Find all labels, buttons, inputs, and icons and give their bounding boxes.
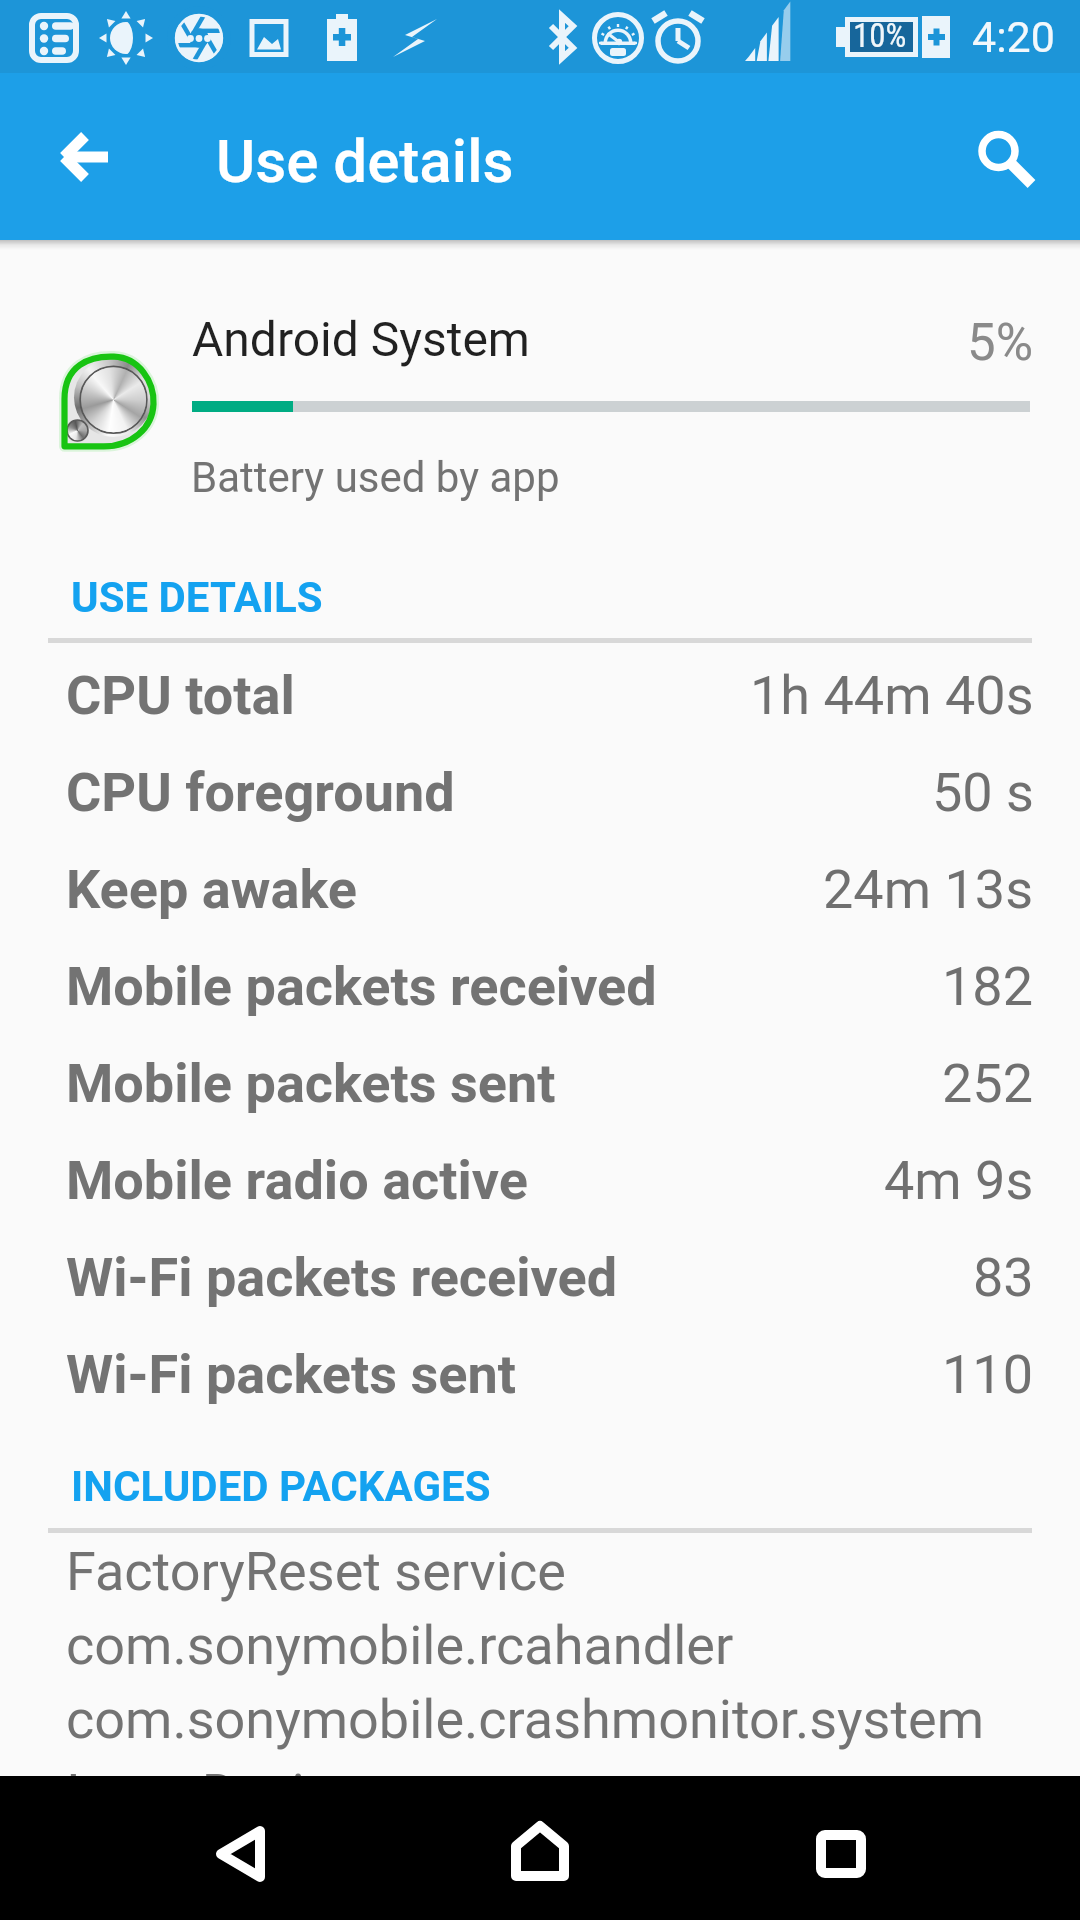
staticText: 110: [942, 1343, 1034, 1406]
staticText: 10%: [853, 16, 907, 55]
button[interactable]: CPU foreground: [0, 744, 1080, 841]
staticText: USE DETAILS: [71, 573, 323, 622]
button[interactable]: Keep awake: [0, 841, 1080, 938]
staticText: 50 s: [932, 761, 1034, 824]
staticText: CPU total: [66, 664, 295, 727]
staticText: com.sonymobile.crashmonitor.system: [66, 1688, 985, 1751]
staticText: Battery used by app: [191, 453, 560, 502]
button[interactable]: Search: [950, 109, 1046, 205]
staticText: Wi-Fi packets sent: [66, 1343, 516, 1406]
staticText: Mobile packets received: [66, 955, 657, 1018]
button[interactable]: Mobile packets received: [0, 938, 1080, 1035]
button[interactable]: Navigate up: [36, 109, 132, 205]
button[interactable]: Home: [468, 1776, 612, 1920]
staticText: CPU foreground: [66, 761, 455, 824]
button[interactable]: Mobile packets sent: [0, 1035, 1080, 1132]
button[interactable]: Mobile radio active: [0, 1132, 1080, 1229]
staticText: 5%: [967, 313, 1034, 373]
staticText: Keep awake: [66, 858, 357, 921]
button[interactable]: Recent apps: [768, 1776, 912, 1920]
staticText: 1h 44m 40s: [750, 664, 1034, 727]
staticText: Input Device: [66, 1762, 362, 1825]
staticText: INCLUDED PACKAGES: [71, 1462, 491, 1511]
button[interactable]: [0, 260, 1080, 515]
staticText: Android System: [192, 311, 530, 367]
staticText: 252: [942, 1052, 1034, 1115]
staticText: Use details: [216, 126, 514, 196]
staticText: Wi-Fi packets received: [66, 1246, 618, 1309]
staticText: com.sonymobile.rcahandler: [66, 1614, 734, 1677]
staticText: Mobile radio active: [66, 1149, 529, 1212]
staticText: 182: [942, 955, 1034, 1018]
button[interactable]: Wi-Fi packets sent: [0, 1326, 1080, 1423]
staticText: 24m 13s: [823, 858, 1034, 921]
button[interactable]: Back: [168, 1776, 312, 1920]
staticText: FactoryReset service: [66, 1540, 566, 1603]
button[interactable]: CPU total: [0, 647, 1080, 744]
staticText: Mobile packets sent: [66, 1052, 556, 1115]
staticText: 4:20: [972, 12, 1055, 62]
staticText: 4m 9s: [884, 1149, 1034, 1212]
staticText: 83: [973, 1246, 1034, 1309]
button[interactable]: Wi-Fi packets received: [0, 1229, 1080, 1326]
